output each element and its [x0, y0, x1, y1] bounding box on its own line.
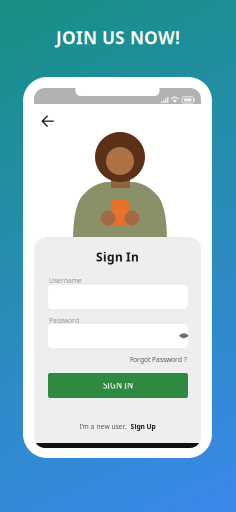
- button[interactable]: Back: [34, 108, 64, 134]
- staticText: Username: [49, 276, 82, 285]
- staticText: SIGN IN: [103, 380, 133, 391]
- button[interactable]: Forgot Password ?: [130, 353, 187, 366]
- staticText: Sign In: [96, 249, 139, 265]
- button[interactable]: Show password: [173, 325, 195, 346]
- staticText: Forgot Password ?: [130, 355, 187, 364]
- button[interactable]: SIGN IN: [48, 373, 188, 398]
- staticText: JOIN US NOW!: [56, 26, 180, 49]
- staticText: Password: [49, 316, 79, 325]
- button[interactable]: I'm a new user.: [79, 420, 155, 433]
- staticText: Sign Up: [130, 422, 155, 431]
- staticText: I'm a new user.: [79, 422, 126, 431]
